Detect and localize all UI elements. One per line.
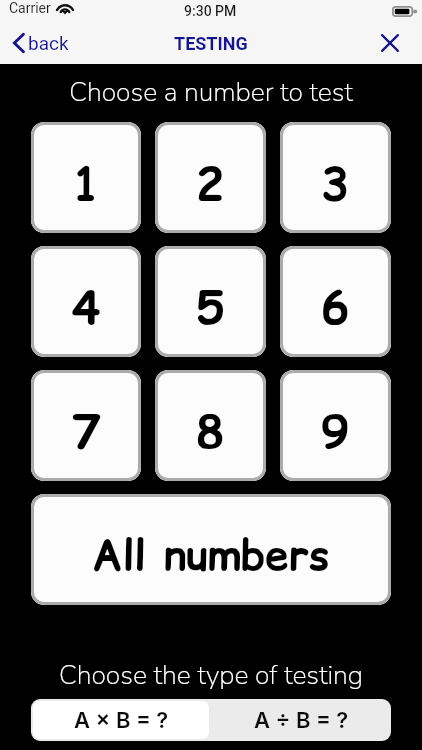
button[interactable]: 6 (280, 246, 391, 357)
staticText: 9:30 PM (184, 3, 237, 19)
button[interactable]: 9 (280, 370, 391, 481)
staticText: 5 (196, 275, 225, 339)
button[interactable]: 2 (155, 122, 266, 233)
button[interactable]: 3 (280, 122, 391, 233)
staticText: Choose a number to test (0, 74, 422, 110)
button[interactable]: Close (357, 20, 422, 64)
staticText: 1 (72, 151, 101, 215)
staticText: 9 (321, 399, 350, 463)
button[interactable]: 8 (155, 370, 266, 481)
button[interactable]: 1 (31, 122, 141, 233)
button[interactable]: All numbers (31, 494, 391, 605)
staticText: A ÷ B = ? (254, 707, 349, 734)
button[interactable]: back (9, 22, 69, 64)
button[interactable]: 4 (31, 246, 141, 357)
staticText: Carrier (9, 0, 51, 16)
staticText: 8 (196, 399, 225, 463)
staticText: Choose the type of testing (0, 657, 422, 693)
staticText: 2 (196, 151, 225, 215)
button[interactable]: A × B = ? (33, 701, 209, 739)
staticText: 4 (72, 275, 101, 339)
button[interactable]: 7 (31, 370, 141, 481)
staticText: TESTING (174, 33, 248, 54)
staticText: A × B = ? (74, 707, 169, 734)
staticText: 3 (321, 151, 350, 215)
staticText: back (28, 32, 69, 54)
staticText: 6 (321, 275, 350, 339)
button[interactable]: A ÷ B = ? (211, 699, 391, 741)
staticText: All numbers (92, 526, 330, 585)
button[interactable]: 5 (155, 246, 266, 357)
staticText: 7 (72, 399, 101, 463)
